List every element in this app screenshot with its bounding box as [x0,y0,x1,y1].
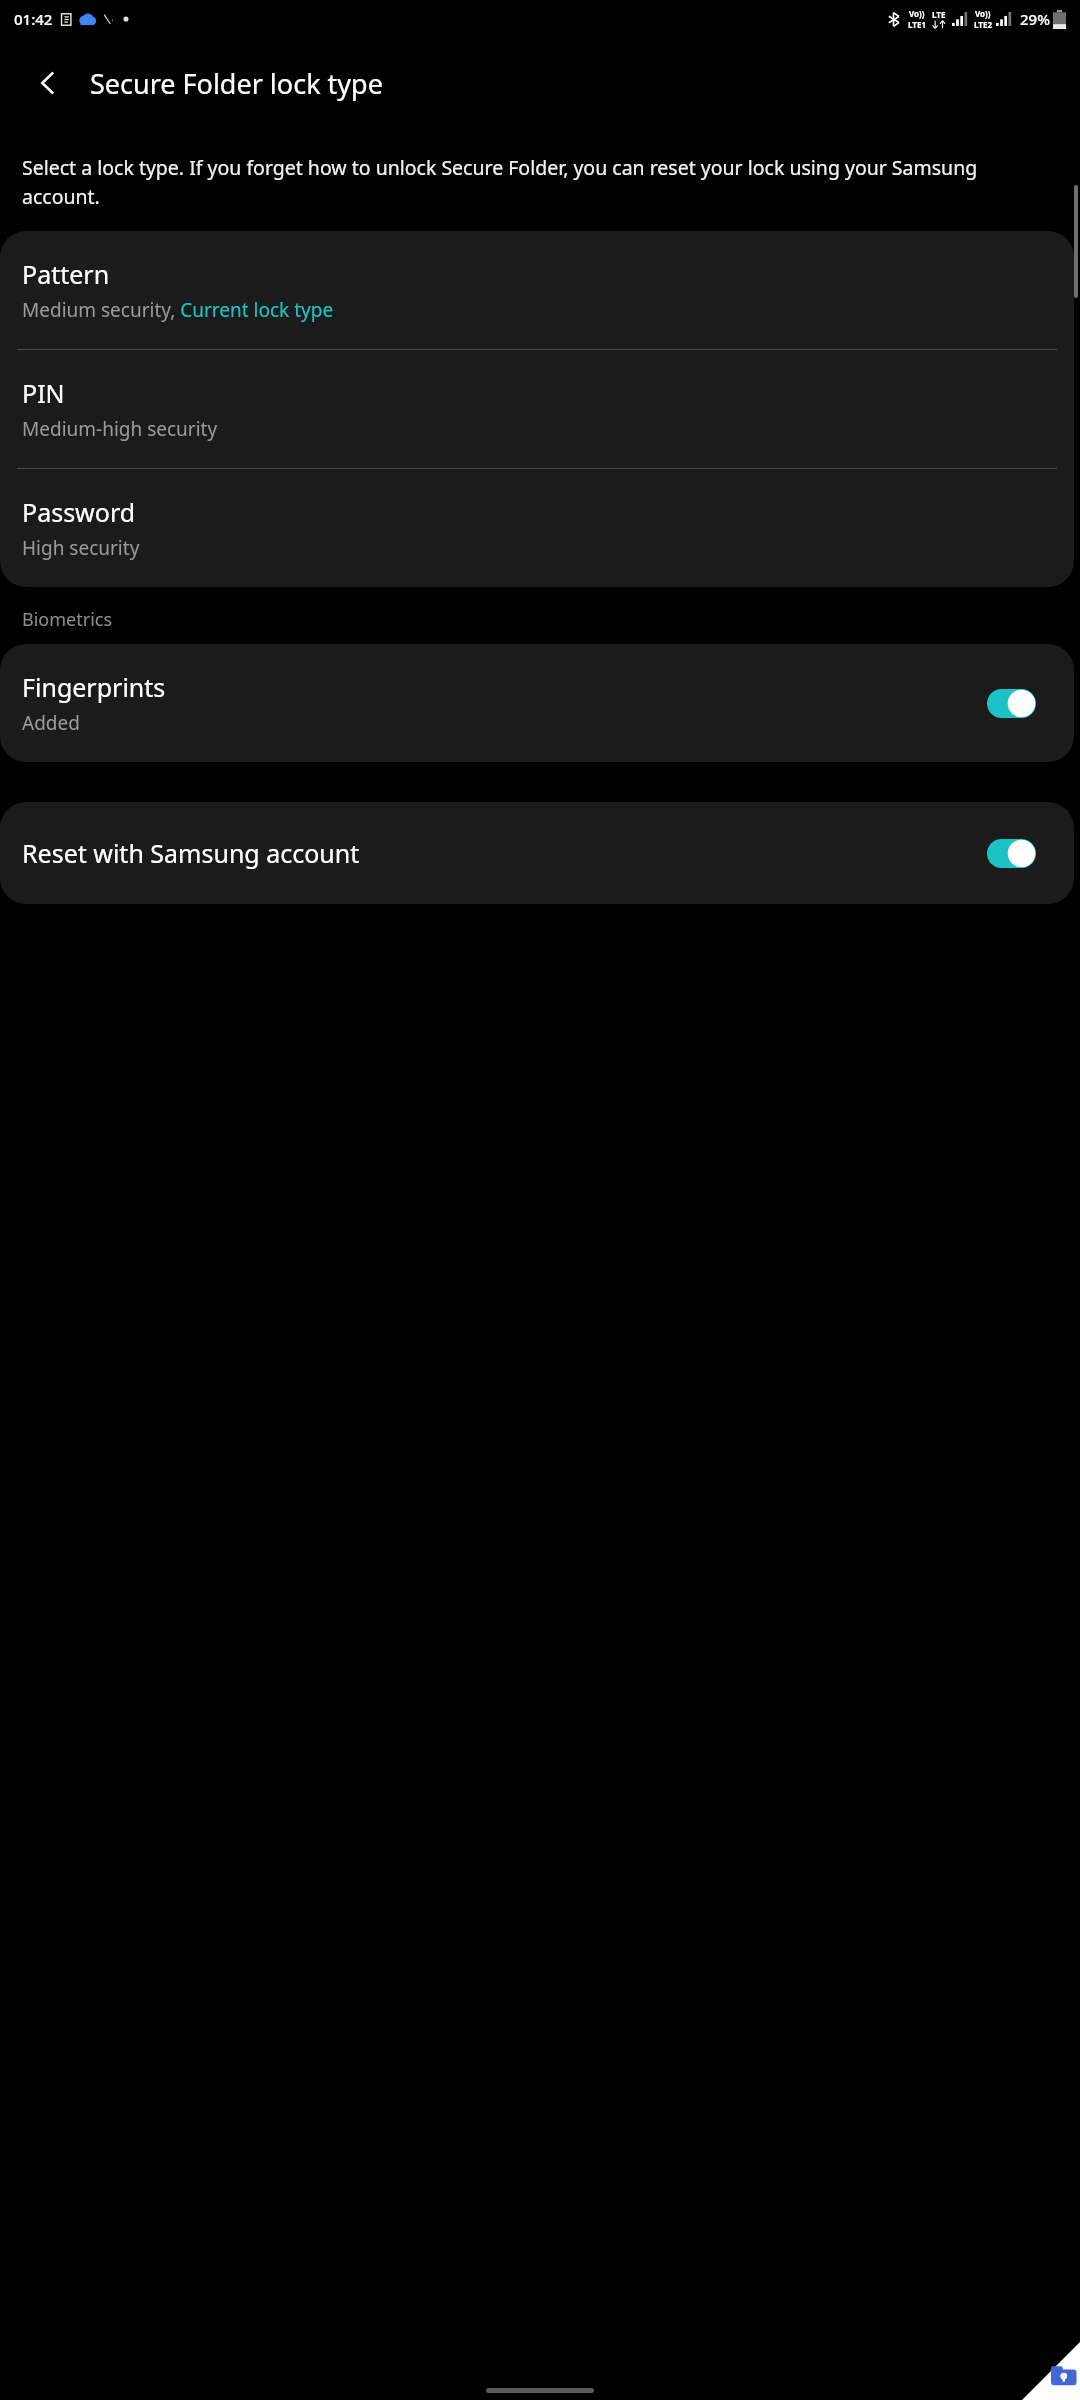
staticText: Added [22,710,80,736]
staticText: 01:42 [14,9,53,29]
button[interactable]: Password [0,469,1074,587]
button[interactable]: Toggle on [987,839,1036,868]
staticText: LTE2 [974,19,992,30]
staticText: Vo)) [975,8,991,19]
staticText: Pattern [22,257,110,291]
button[interactable]: Toggle on [987,689,1036,718]
staticText: Secure Folder lock type [90,65,383,102]
button[interactable]: Back [22,57,74,109]
staticText: High security [22,535,140,561]
staticText: LTE [932,9,946,20]
button[interactable]: PIN [0,350,1074,468]
staticText: Select a lock type. If you forget how to… [22,154,1052,209]
staticText: Fingerprints [22,670,166,704]
button[interactable]: Pattern [0,231,1074,349]
staticText: PIN [22,376,65,410]
button[interactable]: Reset with Samsung account [0,802,1074,904]
staticText: 29% [1020,9,1050,29]
staticText: Medium security, Current lock type [22,297,334,323]
staticText: Reset with Samsung account [22,836,987,870]
staticText: LTE1 [908,19,926,30]
staticText: Medium-high security [22,416,218,442]
staticText: Password [22,495,136,529]
staticText: Vo)) [909,8,925,19]
button[interactable]: Fingerprints [0,644,1074,762]
staticText: Biometrics [22,607,113,632]
